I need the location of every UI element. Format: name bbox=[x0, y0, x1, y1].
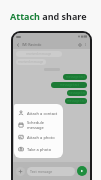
button[interactable]: Call bbox=[78, 43, 82, 47]
button[interactable]: Attach a photo bbox=[14, 131, 63, 143]
staticText: message text bbox=[68, 91, 87, 95]
staticText: received message bbox=[26, 52, 52, 56]
button[interactable]: Send bbox=[77, 166, 87, 176]
button[interactable]: message text bbox=[67, 90, 87, 96]
button[interactable]: Attach bbox=[16, 167, 25, 176]
staticText: Attach a photo bbox=[27, 135, 55, 140]
staticText: Schedule message bbox=[27, 120, 59, 130]
button[interactable]: message text bbox=[65, 98, 87, 104]
button[interactable]: Schedule message bbox=[14, 119, 63, 131]
staticText: Attach a contact bbox=[27, 111, 58, 116]
button[interactable]: Back bbox=[13, 40, 90, 49]
staticText: received message bbox=[18, 60, 44, 64]
staticText: Take a photo bbox=[27, 147, 52, 152]
staticText: Attach and share bbox=[10, 10, 87, 22]
button[interactable]: received message bbox=[16, 59, 46, 65]
button[interactable]: message text bbox=[51, 82, 87, 88]
staticText: message text bbox=[67, 99, 86, 103]
button[interactable]: More options bbox=[84, 43, 87, 46]
button[interactable]: Text message bbox=[27, 167, 75, 176]
button[interactable]: received message bbox=[16, 51, 62, 57]
staticText: (M) Ravindo bbox=[22, 42, 42, 47]
button[interactable]: Attach a contact bbox=[14, 107, 63, 119]
staticText: message text bbox=[66, 75, 85, 79]
button[interactable]: Take a photo bbox=[14, 143, 63, 155]
button[interactable]: Back bbox=[16, 43, 20, 47]
staticText: message text bbox=[60, 83, 79, 87]
button[interactable]: message text bbox=[63, 74, 87, 80]
staticText: Text message bbox=[30, 169, 53, 174]
